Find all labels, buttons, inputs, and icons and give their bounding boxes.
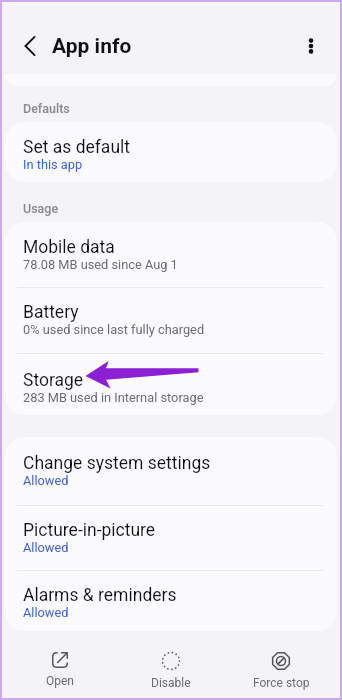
staticText: Mobile data bbox=[23, 237, 115, 258]
staticText: 0% used since last fully charged bbox=[23, 322, 205, 337]
staticText: Usage bbox=[23, 201, 59, 216]
staticText: 78.08 MB used since Aug 1 bbox=[23, 257, 178, 272]
staticText: Allowed bbox=[23, 605, 69, 620]
staticText: Battery bbox=[23, 302, 79, 323]
staticText: Defaults bbox=[23, 101, 70, 116]
button[interactable]: Open bbox=[6, 652, 114, 688]
staticText: Alarms & reminders bbox=[23, 585, 177, 606]
staticText: In this app bbox=[23, 157, 83, 172]
button[interactable]: Picture-in-picture bbox=[5, 506, 337, 571]
staticText: Change system settings bbox=[23, 453, 211, 474]
button[interactable]: Set as default bbox=[5, 122, 337, 182]
staticText: Allowed bbox=[23, 473, 69, 488]
button[interactable]: Storage bbox=[5, 354, 337, 415]
staticText: Storage bbox=[23, 370, 84, 391]
staticText: Set as default bbox=[23, 137, 131, 158]
button[interactable]: Back bbox=[10, 26, 50, 66]
button[interactable]: Alarms & reminders bbox=[5, 571, 337, 631]
staticText: Open bbox=[46, 674, 74, 688]
button[interactable]: Mobile data bbox=[5, 222, 337, 288]
staticText: App info bbox=[52, 34, 132, 59]
button[interactable]: More options bbox=[291, 26, 331, 66]
staticText: Force stop bbox=[253, 676, 310, 690]
button[interactable]: Battery bbox=[5, 288, 337, 354]
button[interactable]: Change system settings bbox=[5, 437, 337, 506]
staticText: Picture-in-picture bbox=[23, 520, 156, 541]
button[interactable]: Disable bbox=[116, 652, 225, 690]
staticText: Allowed bbox=[23, 540, 69, 555]
button[interactable]: Force stop bbox=[227, 652, 335, 690]
staticText: 283 MB used in Internal storage bbox=[23, 390, 204, 405]
staticText: Disable bbox=[151, 676, 191, 690]
